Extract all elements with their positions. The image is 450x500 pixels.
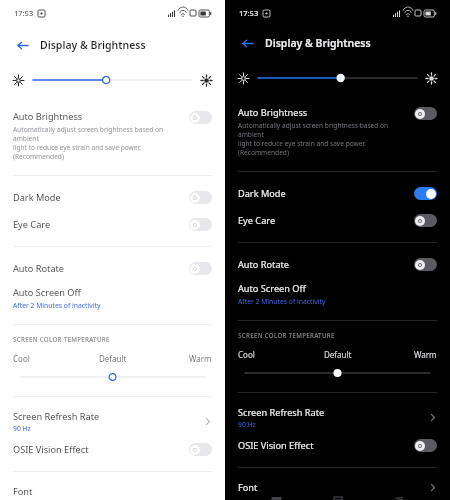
button[interactable]: Auto Brightness xyxy=(0,106,225,165)
button[interactable]: Off xyxy=(189,218,212,231)
staticText: Font xyxy=(238,481,258,494)
button[interactable]: Auto Screen Off xyxy=(0,282,225,314)
button[interactable]: Home xyxy=(327,497,349,500)
button[interactable]: Off xyxy=(414,258,437,271)
staticText: Auto Rotate xyxy=(238,258,290,271)
button[interactable]: Auto Rotate xyxy=(225,251,450,278)
staticText: Auto Brightness xyxy=(13,110,83,123)
staticText: Auto Screen Off xyxy=(238,282,306,295)
button[interactable]: Back xyxy=(12,35,32,55)
staticText: Automatically adjust screen brightness b… xyxy=(238,121,406,157)
staticText: Default xyxy=(99,353,127,364)
button[interactable]: Back xyxy=(237,33,257,53)
staticText: Font xyxy=(13,485,33,498)
staticText: Dark Mode xyxy=(13,191,61,204)
button[interactable]: On xyxy=(414,187,437,200)
staticText: Default xyxy=(324,349,352,360)
staticText: OSIE Vision Effect xyxy=(238,439,314,452)
staticText: SCREEN COLOR TEMPERATURE xyxy=(13,335,110,343)
staticText: Automatically adjust screen brightness b… xyxy=(13,125,181,161)
staticText: Warm xyxy=(189,353,212,364)
staticText: Screen Refresh Rate xyxy=(238,406,325,419)
staticText: Auto Brightness xyxy=(238,106,308,119)
button[interactable]: OSIE Vision Effect xyxy=(225,432,450,459)
button[interactable]: Screen Refresh Rate xyxy=(0,407,225,436)
staticText: Display & Brightness xyxy=(265,36,371,50)
button[interactable]: Auto Brightness xyxy=(225,102,450,161)
staticText: 90 Hz xyxy=(13,424,31,433)
button[interactable]: OSIE Vision Effect xyxy=(0,436,225,463)
staticText: After 2 Minutes of inactivity xyxy=(13,301,101,310)
staticText: Warm xyxy=(414,349,437,360)
staticText: Dark Mode xyxy=(238,187,286,200)
staticText: 17:53 xyxy=(239,8,259,18)
button[interactable]: Eye Care xyxy=(0,211,225,238)
button[interactable]: Font xyxy=(0,482,225,500)
button[interactable]: Dark Mode xyxy=(0,184,225,211)
staticText: SCREEN COLOR TEMPERATURE xyxy=(238,331,335,339)
staticText: OSIE Vision Effect xyxy=(13,443,89,456)
button[interactable]: Off xyxy=(189,443,212,456)
staticText: Eye Care xyxy=(13,218,51,231)
button[interactable]: Dark Mode xyxy=(225,180,450,207)
button[interactable]: Auto Rotate xyxy=(0,255,225,282)
staticText: Auto Rotate xyxy=(13,262,65,275)
staticText: 90 Hz xyxy=(238,420,256,429)
staticText: Cool xyxy=(13,353,30,364)
button[interactable]: Off xyxy=(189,111,212,124)
button[interactable]: Recents xyxy=(265,497,287,500)
button[interactable]: Eye Care xyxy=(225,207,450,234)
button[interactable]: Auto Screen Off xyxy=(225,278,450,310)
staticText: After 2 Minutes of inactivity xyxy=(238,297,326,306)
staticText: Auto Screen Off xyxy=(13,286,81,299)
staticText: Screen Refresh Rate xyxy=(13,410,100,423)
button[interactable]: Font xyxy=(225,478,450,497)
button[interactable]: Off xyxy=(414,439,437,452)
staticText: 17:53 xyxy=(14,8,34,18)
button[interactable]: Screen Refresh Rate xyxy=(225,403,450,432)
button[interactable]: Off xyxy=(414,107,437,120)
staticText: Display & Brightness xyxy=(40,38,146,52)
staticText: Cool xyxy=(238,349,255,360)
button[interactable]: Off xyxy=(189,262,212,275)
button[interactable]: Off xyxy=(189,191,212,204)
button[interactable]: Off xyxy=(414,214,437,227)
staticText: Eye Care xyxy=(238,214,276,227)
button[interactable]: Back xyxy=(388,497,410,500)
